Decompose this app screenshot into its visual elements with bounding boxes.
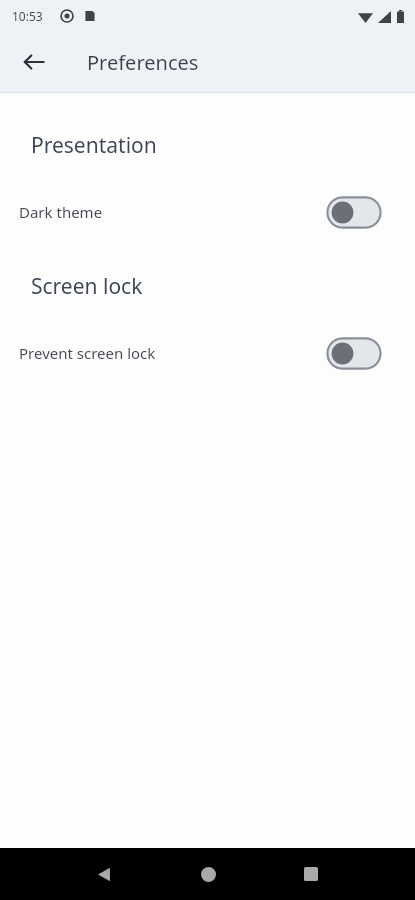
button[interactable]: Back (10, 38, 58, 86)
staticText: Prevent screen lock (19, 343, 326, 363)
staticText: Screen lock (31, 272, 415, 301)
button[interactable]: Home (182, 848, 234, 900)
staticText: 10:53 (12, 8, 43, 24)
staticText: Dark theme (19, 202, 326, 222)
button[interactable]: Back (78, 848, 130, 900)
button[interactable]: Recent apps (285, 848, 337, 900)
staticText: Presentation (31, 131, 415, 160)
button[interactable]: Toggle (326, 196, 382, 229)
staticText: Preferences (87, 49, 199, 76)
button[interactable]: Dark theme (0, 190, 415, 234)
button[interactable]: Toggle (326, 337, 382, 370)
button[interactable]: Prevent screen lock (0, 331, 415, 375)
